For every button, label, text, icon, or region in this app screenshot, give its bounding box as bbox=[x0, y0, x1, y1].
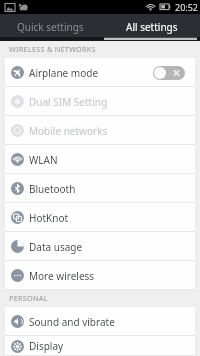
button[interactable]: WLAN bbox=[5, 145, 195, 174]
staticText: Bluetooth bbox=[29, 182, 76, 196]
button[interactable]: HotKnot bbox=[5, 203, 195, 232]
button[interactable]: More wireless bbox=[5, 261, 195, 290]
staticText: Dual SIM Setting bbox=[29, 95, 108, 109]
staticText: Airplane mode bbox=[29, 66, 99, 80]
staticText: Data usage bbox=[29, 240, 83, 254]
staticText: Display bbox=[29, 339, 64, 353]
staticText: Mobile networks bbox=[29, 124, 108, 138]
button[interactable]: Airplane mode toggle bbox=[153, 66, 185, 80]
staticText: WIRELESS & NETWORKS bbox=[9, 44, 96, 54]
button[interactable]: Data usage bbox=[5, 232, 195, 261]
button[interactable]: Display bbox=[5, 336, 195, 356]
button[interactable]: Sound and vibrate bbox=[5, 307, 195, 336]
staticText: 20:52 bbox=[175, 1, 199, 13]
button[interactable]: Quick settings bbox=[0, 14, 100, 41]
staticText: HotKnot bbox=[29, 211, 69, 225]
button[interactable]: Bluetooth bbox=[5, 174, 195, 203]
button[interactable]: All settings bbox=[100, 14, 200, 41]
button[interactable]: Mobile networks bbox=[5, 116, 195, 145]
staticText: Sound and vibrate bbox=[29, 315, 115, 329]
button[interactable]: Airplane mode bbox=[5, 58, 195, 87]
button[interactable]: Dual SIM Setting bbox=[5, 87, 195, 116]
staticText: WLAN bbox=[29, 153, 58, 167]
staticText: Quick settings bbox=[17, 20, 84, 34]
staticText: All settings bbox=[126, 20, 178, 34]
staticText: More wireless bbox=[29, 269, 95, 283]
staticText: PERSONAL bbox=[9, 293, 48, 303]
